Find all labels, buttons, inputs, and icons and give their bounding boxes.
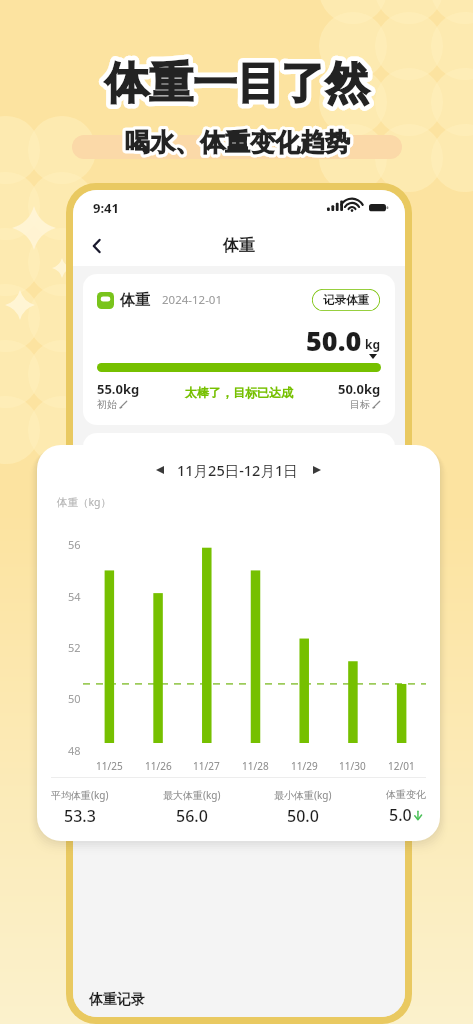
staticText: 11/25 xyxy=(96,759,123,773)
staticText: 体重记录 xyxy=(89,991,145,1009)
staticText: 52 xyxy=(68,640,81,655)
staticText: 50.0kg xyxy=(338,380,381,398)
staticText: 9:41 xyxy=(93,199,119,217)
staticText: 记录体重 xyxy=(323,293,369,307)
staticText: 初始 xyxy=(97,398,117,411)
staticText: 53.3 xyxy=(64,805,96,827)
staticText: kg xyxy=(365,336,381,352)
staticText: 体重 xyxy=(223,236,255,256)
staticText: 体重一目了然 xyxy=(105,56,369,111)
staticText: 11/28 xyxy=(242,759,269,773)
staticText: 体重 xyxy=(120,291,150,310)
staticText: 11/29 xyxy=(291,759,318,773)
staticText: 56 xyxy=(68,537,81,552)
staticText: 11/26 xyxy=(145,759,172,773)
staticText: 50.0 xyxy=(287,805,319,827)
staticText: 11/30 xyxy=(339,759,366,773)
staticText: 平均体重(kg) xyxy=(51,788,109,802)
staticText: 2024-12-01 xyxy=(162,292,223,308)
staticText: 11月25日-12月1日 xyxy=(177,460,298,480)
staticText: 最大体重(kg) xyxy=(163,788,221,802)
staticText: 5.0 xyxy=(389,804,412,826)
staticText: 11/27 xyxy=(193,759,220,773)
staticText: 48 xyxy=(68,743,81,758)
staticText: 55.0kg xyxy=(97,380,140,398)
staticText: 50 xyxy=(68,691,81,706)
staticText: 50.0 xyxy=(306,322,362,359)
staticText: 体重一目了然 xyxy=(105,56,369,111)
staticText: 体重变化 xyxy=(386,788,426,801)
staticText: 56.0 xyxy=(176,805,208,827)
button[interactable]: 返回 xyxy=(81,230,113,262)
button[interactable]: 记录体重 xyxy=(311,288,381,312)
staticText: 目标 xyxy=(350,398,370,411)
staticText: 12/01 xyxy=(388,759,415,773)
staticText: 喝水、体重变化趋势 xyxy=(125,127,350,158)
button[interactable]: 下一周 xyxy=(306,459,328,481)
staticText: 喝水、体重变化趋势 xyxy=(125,127,350,158)
staticText: 最小体重(kg) xyxy=(274,788,332,802)
staticText: 54 xyxy=(68,589,81,604)
button[interactable]: 上一周 xyxy=(149,459,171,481)
staticText: 体重（kg） xyxy=(57,495,112,509)
staticText: 太棒了，目标已达成 xyxy=(185,385,293,400)
